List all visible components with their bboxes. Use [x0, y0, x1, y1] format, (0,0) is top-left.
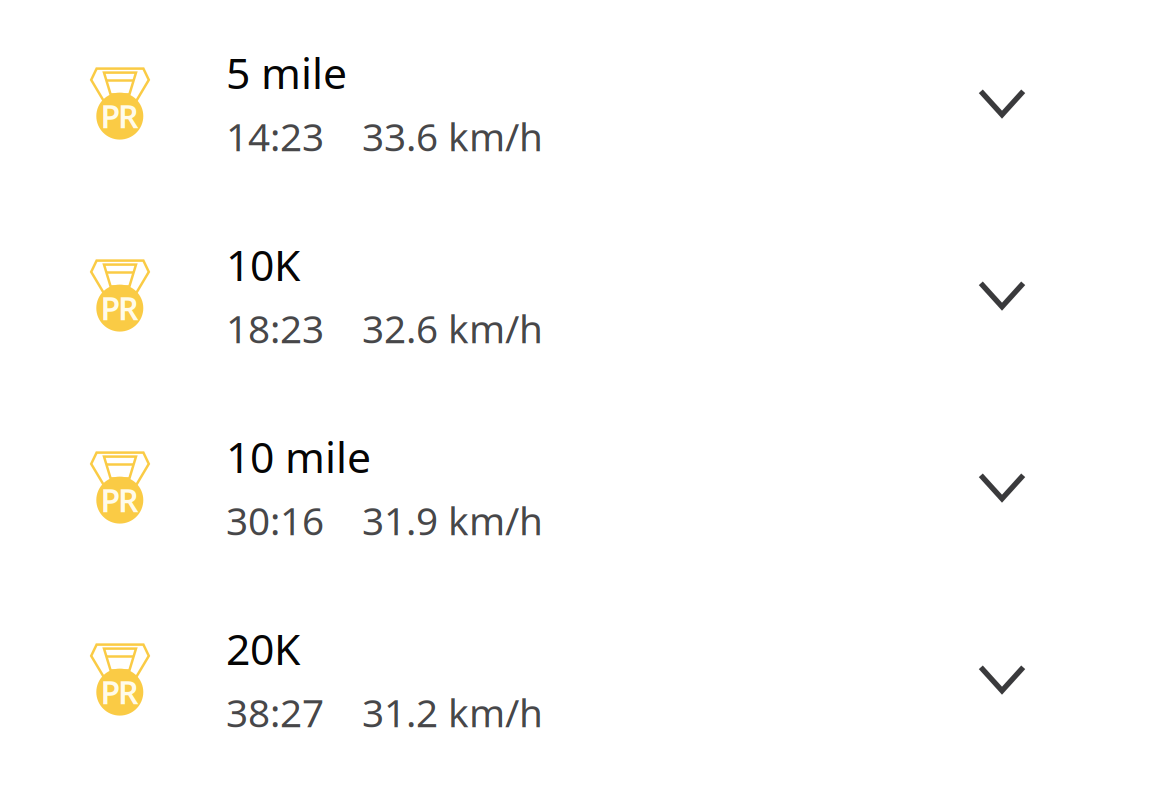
staticText: 30:16 [226, 495, 324, 546]
staticText: 18:23 [226, 303, 324, 354]
staticText: PR [100, 479, 139, 521]
staticText: PR [100, 287, 139, 329]
button[interactable]: PR [0, 199, 1170, 391]
staticText: PR [100, 95, 139, 137]
staticText: 10 mile [226, 428, 371, 485]
button[interactable]: PR [0, 391, 1170, 583]
staticText: 20K [226, 620, 300, 677]
button[interactable]: PR [0, 583, 1170, 775]
staticText: 31.2 km/h [362, 687, 543, 738]
staticText: 32.6 km/h [362, 303, 543, 354]
staticText: 33.6 km/h [362, 111, 543, 162]
staticText: 5 mile [226, 44, 347, 101]
staticText: 14:23 [226, 111, 324, 162]
staticText: PR [100, 671, 139, 713]
staticText: 10K [226, 236, 300, 293]
staticText: 38:27 [226, 687, 324, 738]
button[interactable]: PR [0, 7, 1170, 199]
staticText: 31.9 km/h [362, 495, 543, 546]
